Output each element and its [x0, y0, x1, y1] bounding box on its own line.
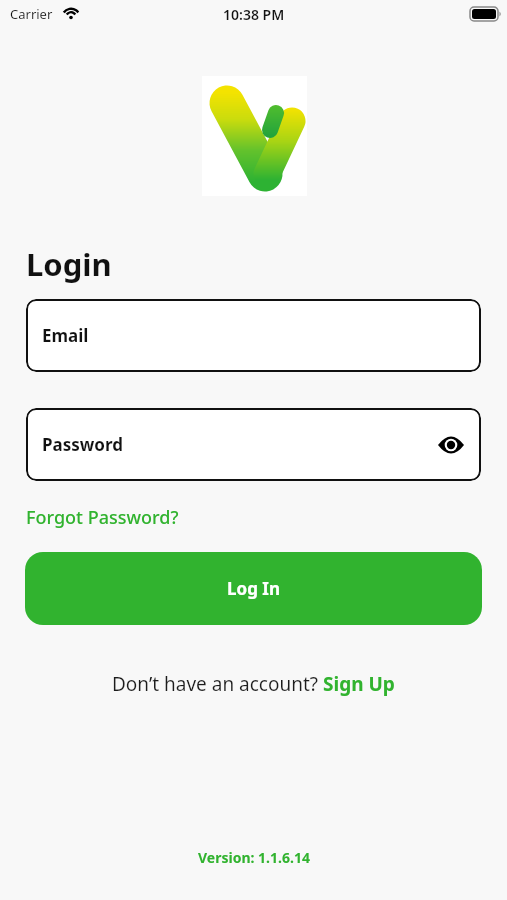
- staticText: 10:38 PM: [223, 5, 285, 24]
- staticText: Password: [42, 433, 123, 456]
- button[interactable]: Log In: [25, 552, 482, 625]
- staticText: Log In: [227, 577, 280, 600]
- button[interactable]: Forgot Password?: [26, 505, 179, 530]
- button[interactable]: Don’t have an account? Sign Up: [112, 671, 395, 697]
- button[interactable]: Email: [26, 299, 481, 372]
- staticText: Carrier: [10, 5, 53, 23]
- staticText: Login: [26, 243, 112, 285]
- staticText: Version: 1.1.6.14: [198, 848, 310, 867]
- button[interactable]: Password: [26, 408, 481, 481]
- button[interactable]: [437, 434, 465, 456]
- staticText: Email: [42, 324, 89, 347]
